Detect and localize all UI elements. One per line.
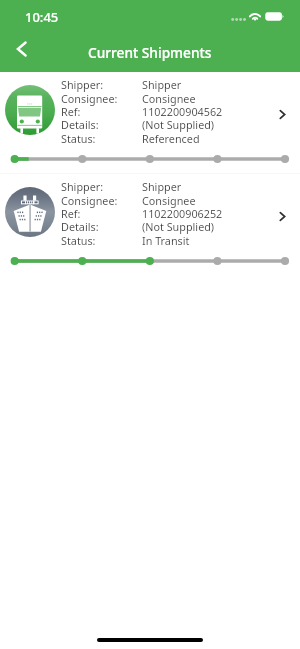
staticText: Ref:	[61, 104, 81, 119]
staticText: (Not Supplied)	[142, 219, 215, 234]
staticText: In Transit	[142, 233, 190, 248]
button[interactable]: Back	[4, 31, 40, 67]
staticText: Consignee	[142, 91, 196, 106]
staticText: Consignee:	[61, 193, 118, 208]
staticText: Consignee:	[61, 91, 118, 106]
staticText: Current Shipments	[88, 43, 212, 62]
staticText: (Not Supplied)	[142, 117, 215, 132]
staticText: Details:	[61, 219, 99, 234]
staticText: Shipper:	[61, 179, 104, 194]
staticText: 10:45	[25, 8, 59, 26]
staticText: Shipper	[142, 179, 182, 194]
staticText: Shipper:	[61, 77, 104, 92]
button[interactable]: Shipper:	[0, 174, 300, 275]
staticText: Referenced	[142, 131, 200, 146]
staticText: Shipper	[142, 77, 182, 92]
staticText: Status:	[61, 131, 96, 146]
staticText: Status:	[61, 233, 96, 248]
staticText: Details:	[61, 117, 99, 132]
staticText: 1102200904562	[142, 104, 223, 119]
button[interactable]: Shipper:	[0, 72, 300, 173]
staticText: 1102200906252	[142, 206, 223, 221]
staticText: Ref:	[61, 206, 81, 221]
staticText: Consignee	[142, 193, 196, 208]
